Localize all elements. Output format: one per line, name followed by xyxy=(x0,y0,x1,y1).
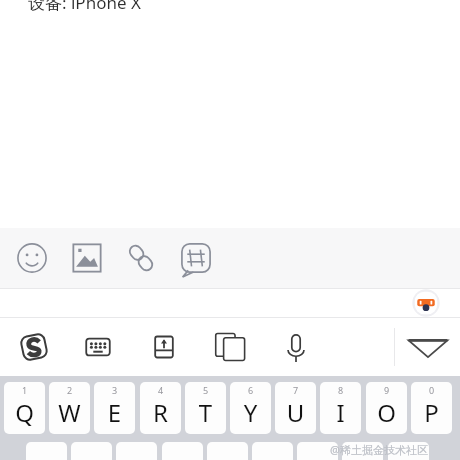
button[interactable]: 6 xyxy=(230,382,271,434)
button[interactable]: Translate xyxy=(209,326,251,368)
button[interactable] xyxy=(342,442,383,460)
button[interactable]: 8 xyxy=(320,382,361,434)
staticText: R xyxy=(140,396,181,429)
staticText: 设备: iPhone X xyxy=(28,0,141,14)
button[interactable]: 9 xyxy=(366,382,407,434)
staticText: Q xyxy=(4,396,45,429)
button[interactable] xyxy=(162,442,203,460)
staticText: T xyxy=(185,396,226,429)
button[interactable]: 3 xyxy=(94,382,135,434)
button[interactable]: Keyboard layout xyxy=(77,326,119,368)
staticText: 9 xyxy=(366,384,407,396)
button[interactable]: 7 xyxy=(275,382,316,434)
staticText: E xyxy=(94,396,135,429)
button[interactable]: Insert image xyxy=(65,236,109,280)
button[interactable]: Emoji xyxy=(10,236,54,280)
button[interactable]: Topic xyxy=(174,236,218,280)
staticText: Y xyxy=(230,396,271,429)
staticText: 6 xyxy=(230,384,271,396)
staticText: 0 xyxy=(411,384,452,396)
button[interactable]: 设备: iPhone X xyxy=(28,0,141,14)
button[interactable]: Sogou input xyxy=(13,326,55,368)
staticText: 1 xyxy=(4,384,45,396)
button[interactable] xyxy=(388,442,429,460)
button[interactable] xyxy=(207,442,248,460)
button[interactable]: 1 xyxy=(4,382,45,434)
staticText: I xyxy=(320,396,361,429)
button[interactable]: Voice input xyxy=(275,326,317,368)
staticText: 2 xyxy=(49,384,90,396)
staticText: O xyxy=(366,396,407,429)
button[interactable]: 4 xyxy=(140,382,181,434)
staticText: 4 xyxy=(140,384,181,396)
button[interactable]: Insert link xyxy=(119,236,163,280)
staticText: 5 xyxy=(185,384,226,396)
button[interactable] xyxy=(297,442,338,460)
staticText: 7 xyxy=(275,384,316,396)
button[interactable] xyxy=(26,442,67,460)
button[interactable]: Share xyxy=(143,326,185,368)
staticText: 3 xyxy=(94,384,135,396)
button[interactable] xyxy=(252,442,293,460)
button[interactable]: Assistant xyxy=(412,289,440,317)
button[interactable] xyxy=(116,442,157,460)
staticText: 8 xyxy=(320,384,361,396)
button[interactable] xyxy=(71,442,112,460)
staticText: @稀土掘金技术社区 xyxy=(330,442,428,457)
staticText: U xyxy=(275,396,316,429)
staticText: W xyxy=(49,396,90,429)
button[interactable]: 0 xyxy=(411,382,452,434)
button[interactable]: Hide keyboard xyxy=(406,331,450,363)
button[interactable]: 2 xyxy=(49,382,90,434)
button[interactable]: 5 xyxy=(185,382,226,434)
staticText: P xyxy=(411,396,452,429)
